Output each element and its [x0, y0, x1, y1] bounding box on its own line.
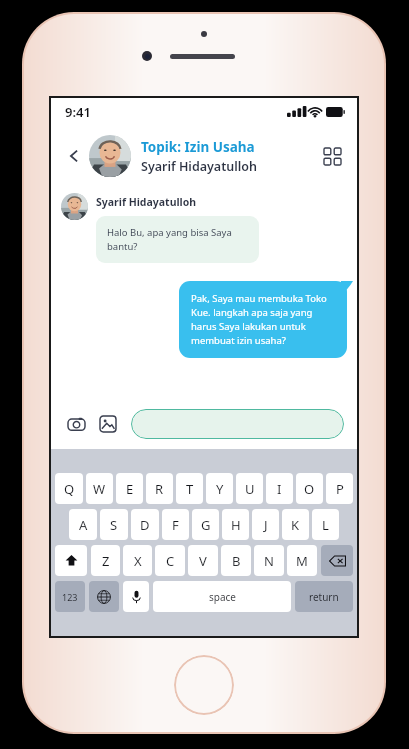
staticText: K [291, 516, 300, 534]
staticText: J [264, 516, 268, 534]
button[interactable]: space [153, 581, 291, 612]
staticText: 9:41 [65, 103, 91, 121]
staticText: 123 [62, 591, 78, 603]
staticText: S [110, 516, 118, 534]
button[interactable]: Home [174, 655, 234, 715]
staticText: space [209, 590, 236, 604]
button[interactable]: Key [123, 581, 149, 612]
staticText: Q [64, 480, 75, 498]
button[interactable]: K [282, 509, 309, 540]
staticText: I [277, 480, 282, 498]
button[interactable]: C [155, 545, 185, 576]
button[interactable]: Photos [96, 412, 120, 436]
button[interactable]: 123 [55, 581, 85, 612]
staticText: F [172, 516, 179, 534]
staticText: return [309, 590, 339, 604]
staticText: C [166, 552, 175, 570]
button[interactable]: Halo Bu, apa yang bisa Saya bantu? [96, 216, 259, 263]
staticText: W [93, 480, 106, 498]
button[interactable]: Y [206, 473, 233, 504]
button[interactable]: S [100, 509, 128, 540]
button[interactable]: N [254, 545, 284, 576]
staticText: Syarif Hidayatulloh [96, 195, 197, 209]
staticText: Y [216, 480, 224, 498]
button[interactable]: Z [91, 545, 120, 576]
button[interactable]: U [236, 473, 263, 504]
staticText: Topik: Izin Usaha [141, 138, 255, 156]
button[interactable]: J [252, 509, 279, 540]
button[interactable]: F [162, 509, 189, 540]
staticText: G [201, 516, 211, 534]
button[interactable]: Camera [64, 412, 88, 436]
staticText: Halo Bu, apa yang bisa Saya bantu? [107, 226, 248, 253]
staticText: D [140, 516, 150, 534]
button[interactable]: L [312, 509, 339, 540]
button[interactable]: P [326, 473, 353, 504]
button[interactable]: X [123, 545, 152, 576]
staticText: V [199, 552, 207, 570]
button[interactable]: M [287, 545, 317, 576]
staticText: B [232, 552, 241, 570]
button[interactable]: Key [55, 545, 87, 576]
staticText: Pak, Saya mau membuka Toko Kue. langkah … [191, 292, 335, 347]
button[interactable]: W [86, 473, 113, 504]
button[interactable]: D [131, 509, 159, 540]
button[interactable]: O [296, 473, 323, 504]
staticText: M [296, 552, 308, 570]
button[interactable]: Key [89, 581, 119, 612]
button[interactable]: T [176, 473, 203, 504]
button[interactable]: G [192, 509, 219, 540]
button[interactable]: Menu [317, 141, 347, 171]
button[interactable]: Pak, Saya mau membuka Toko Kue. langkah … [179, 281, 347, 358]
button[interactable]: Q [55, 473, 83, 504]
staticText: P [336, 480, 344, 498]
staticText: H [231, 516, 241, 534]
staticText: N [264, 552, 274, 570]
button[interactable]: R [146, 473, 173, 504]
staticText: A [79, 516, 88, 534]
button[interactable]: I [266, 473, 293, 504]
staticText: X [134, 552, 142, 570]
staticText: E [126, 480, 134, 498]
staticText: U [245, 480, 255, 498]
button[interactable]: A [69, 509, 97, 540]
staticText: T [186, 480, 194, 498]
button[interactable]: B [221, 545, 251, 576]
staticText: L [322, 516, 329, 534]
button[interactable]: V [188, 545, 218, 576]
button[interactable]: E [116, 473, 143, 504]
button[interactable]: Back [61, 143, 87, 169]
staticText: Z [102, 552, 110, 570]
staticText: O [304, 480, 315, 498]
button[interactable]: Message input [131, 409, 344, 439]
button[interactable]: H [222, 509, 249, 540]
button[interactable]: return [295, 581, 353, 612]
staticText: Syarif Hidayatulloh [141, 158, 257, 175]
staticText: R [155, 480, 164, 498]
button[interactable]: Key [321, 545, 353, 576]
